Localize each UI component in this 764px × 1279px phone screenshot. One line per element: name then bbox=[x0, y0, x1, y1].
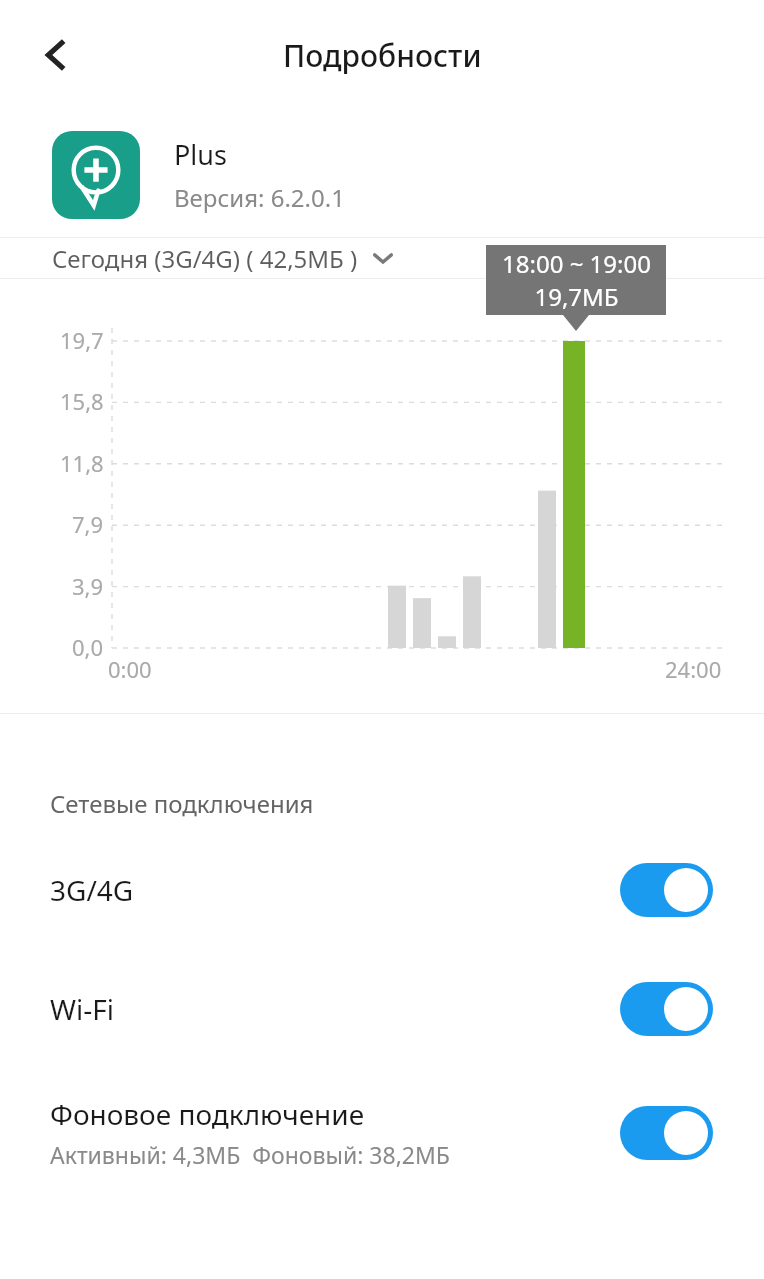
staticText: Wi-Fi bbox=[50, 990, 115, 1028]
staticText: 11,8 bbox=[60, 448, 104, 478]
staticText: 19,7 bbox=[60, 325, 104, 355]
staticText: Версия: 6.2.0.1 bbox=[174, 181, 345, 214]
staticText: 15,8 bbox=[60, 386, 104, 416]
button[interactable]: Back bbox=[26, 25, 86, 85]
button[interactable]: 3G/4G toggle bbox=[620, 863, 713, 917]
staticText: 19,7МБ bbox=[534, 280, 619, 313]
button[interactable]: 3G/4G bbox=[0, 855, 764, 925]
staticText: 18:00 ~ 19:00 bbox=[502, 247, 651, 280]
button[interactable]: Wi-Fi toggle bbox=[620, 982, 713, 1036]
button[interactable]: Сегодня (3G/4G) ( 42,5МБ ) bbox=[0, 238, 764, 278]
button[interactable]: Фоновое подключение toggle bbox=[620, 1106, 713, 1160]
button[interactable]: Plus bbox=[0, 125, 764, 225]
staticText: 3,9 bbox=[72, 571, 104, 601]
staticText: 0:00 bbox=[108, 654, 152, 684]
staticText: 0,0 bbox=[72, 632, 104, 662]
staticText: Подробности bbox=[283, 35, 482, 76]
button[interactable]: Wi-Fi bbox=[0, 974, 764, 1044]
button[interactable]: Фоновое подключение bbox=[0, 1085, 764, 1180]
staticText: 7,9 bbox=[72, 509, 104, 539]
staticText: 24:00 bbox=[665, 654, 722, 684]
staticText: 3G/4G bbox=[50, 871, 134, 909]
staticText: Фоновое подключение bbox=[50, 1095, 365, 1133]
staticText: Plus bbox=[174, 136, 227, 173]
staticText: Активный: 4,3МБ Фоновый: 38,2МБ bbox=[50, 1139, 450, 1170]
staticText: Сетевые подключения bbox=[50, 787, 314, 820]
staticText: Сегодня (3G/4G) ( 42,5МБ ) bbox=[52, 242, 358, 275]
